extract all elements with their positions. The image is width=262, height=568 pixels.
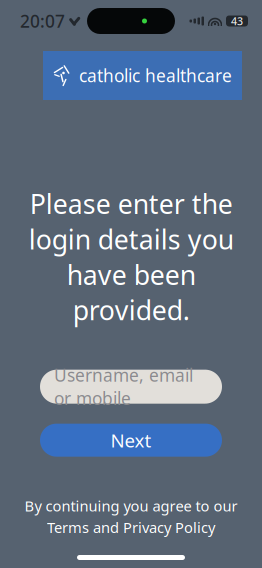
staticText: 43: [231, 14, 243, 28]
staticText: Terms and Privacy Policy: [47, 517, 215, 537]
staticText: Username, email or mobile: [54, 364, 193, 410]
staticText: 20:07: [20, 9, 65, 32]
button[interactable]: Next: [40, 424, 222, 457]
button[interactable]: Terms and Privacy Policy: [47, 517, 215, 537]
staticText: By continuing you agree to our: [24, 496, 237, 515]
staticText: Next: [110, 428, 151, 453]
button[interactable]: Username, email or mobile: [40, 370, 222, 404]
staticText: catholic healthcare: [79, 64, 232, 87]
staticText: Please enter the login details you have …: [28, 186, 233, 328]
